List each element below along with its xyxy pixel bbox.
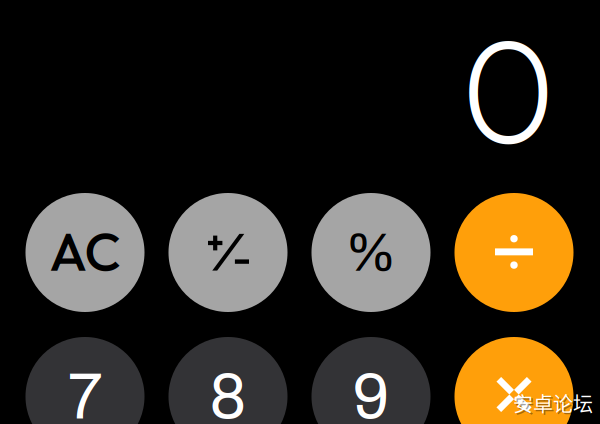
button[interactable]: Multiply	[454, 337, 573, 424]
button[interactable]: Divide	[454, 193, 573, 312]
staticText: 7	[67, 362, 102, 424]
button[interactable]: Plus minus	[168, 193, 287, 312]
button[interactable]: 9	[311, 337, 430, 424]
staticText: 安卓论坛	[514, 390, 594, 419]
staticText: 8	[209, 362, 246, 424]
button[interactable]: %	[311, 193, 430, 312]
button[interactable]: AC	[25, 193, 144, 312]
staticText: 0	[459, 3, 556, 173]
button[interactable]: 8	[168, 337, 287, 424]
staticText: %	[345, 224, 396, 282]
button[interactable]: 7	[25, 337, 144, 424]
staticText: AC	[49, 217, 120, 285]
staticText: 安卓论坛	[513, 388, 593, 417]
staticText: 9	[352, 362, 389, 424]
